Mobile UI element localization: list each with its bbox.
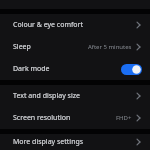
staticText: Dark mode — [13, 64, 121, 74]
staticText: Sleep — [13, 42, 88, 52]
staticText: After 5 minutes — [88, 43, 132, 51]
button[interactable]: Colour & eye comfort — [0, 14, 150, 36]
staticText: Screen resolution — [13, 113, 116, 123]
button[interactable]: Text and display size — [0, 85, 150, 107]
staticText: Colour & eye comfort — [13, 20, 134, 30]
button[interactable]: Sleep — [0, 36, 150, 58]
button[interactable]: Dark mode — [0, 58, 150, 80]
button[interactable]: More display settings — [0, 134, 150, 150]
staticText: More display settings — [13, 137, 134, 147]
staticText: Text and display size — [13, 91, 134, 101]
staticText: FHD+ — [116, 114, 132, 122]
button[interactable]: Screen resolution — [0, 107, 150, 129]
